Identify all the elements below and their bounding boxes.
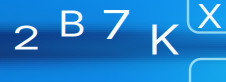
- staticText: 7: [106, 0, 127, 49]
- staticText: X: [198, 0, 220, 36]
- staticText: K: [151, 14, 177, 64]
- staticText: B: [60, 2, 83, 45]
- staticText: 2: [16, 17, 35, 57]
